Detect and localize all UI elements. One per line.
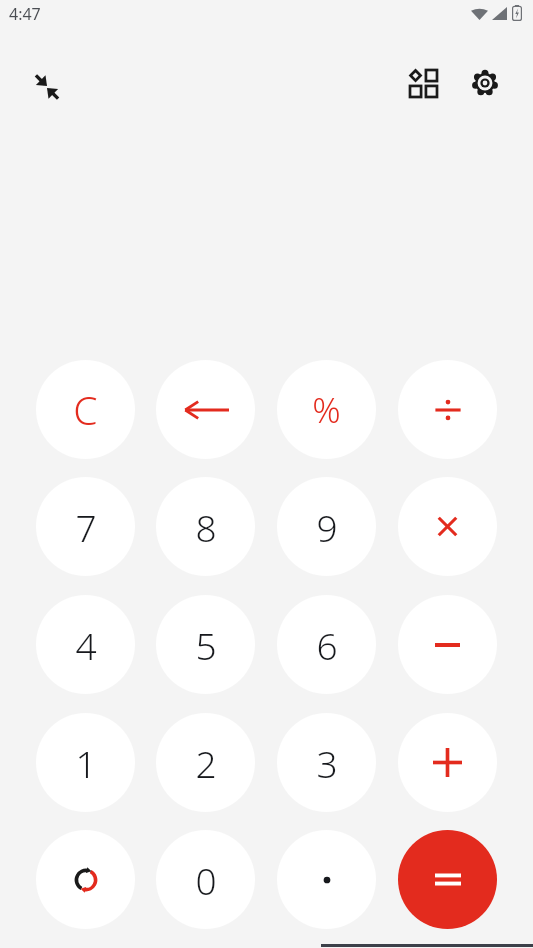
- staticText: 1: [75, 738, 97, 788]
- button[interactable]: Backspace: [156, 360, 255, 459]
- button[interactable]: 3: [277, 713, 376, 812]
- button[interactable]: Modes: [397, 57, 449, 109]
- button[interactable]: 7: [36, 477, 135, 576]
- staticText: %: [312, 386, 341, 434]
- button[interactable]: 6: [277, 595, 376, 694]
- button[interactable]: Convert units: [36, 830, 135, 929]
- button[interactable]: Settings: [459, 57, 511, 109]
- staticText: 3: [316, 738, 338, 788]
- staticText: 8: [195, 502, 217, 552]
- staticText: 0: [195, 855, 217, 905]
- button[interactable]: 8: [156, 477, 255, 576]
- staticText: 4: [75, 620, 97, 670]
- button[interactable]: %: [277, 360, 376, 459]
- staticText: 9: [316, 502, 338, 552]
- button[interactable]: Add: [398, 713, 497, 812]
- staticText: 4:47: [9, 3, 41, 25]
- button[interactable]: 0: [156, 830, 255, 929]
- button[interactable]: Collapse: [21, 61, 73, 113]
- button[interactable]: 1: [36, 713, 135, 812]
- staticText: 5: [195, 620, 217, 670]
- staticText: 6: [316, 620, 338, 670]
- button[interactable]: 5: [156, 595, 255, 694]
- button[interactable]: Decimal point: [277, 830, 376, 929]
- button[interactable]: Multiply: [398, 477, 497, 576]
- staticText: 2: [195, 738, 217, 788]
- button[interactable]: Equals: [398, 830, 497, 929]
- button[interactable]: 4: [36, 595, 135, 694]
- staticText: 7: [75, 502, 97, 552]
- button[interactable]: 2: [156, 713, 255, 812]
- staticText: C: [73, 383, 98, 436]
- button[interactable]: 9: [277, 477, 376, 576]
- button[interactable]: Subtract: [398, 595, 497, 694]
- button[interactable]: C: [36, 360, 135, 459]
- button[interactable]: Divide: [398, 360, 497, 459]
